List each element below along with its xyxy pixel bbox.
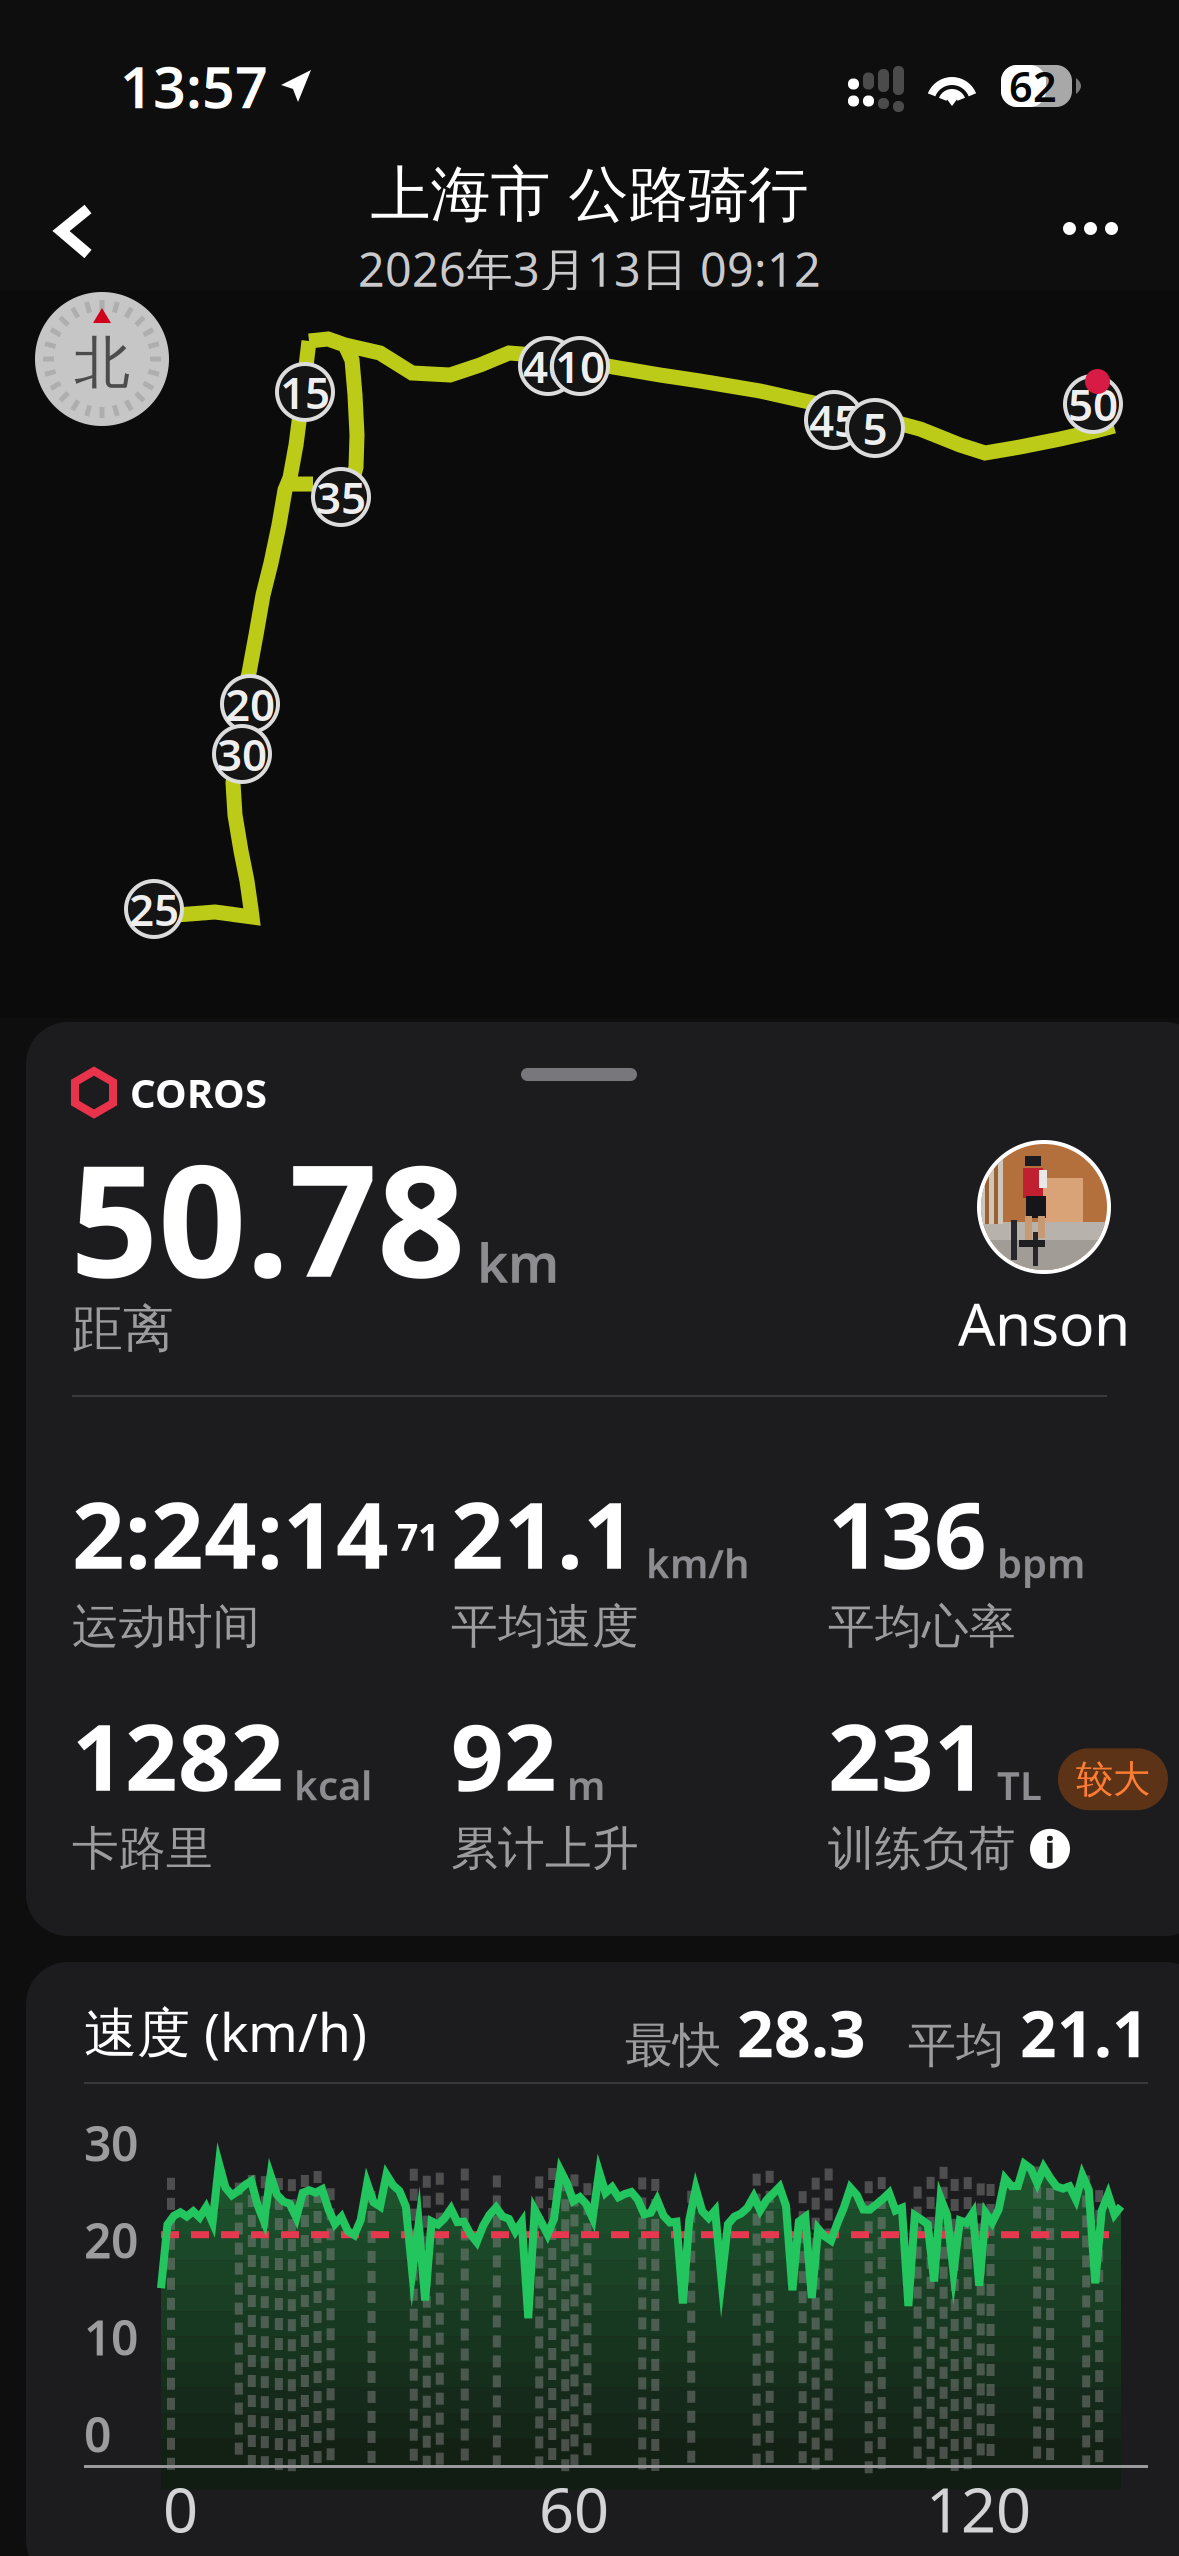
staticText: 62	[1009, 59, 1057, 113]
staticText: 10	[555, 337, 605, 395]
staticText: 92	[451, 1694, 557, 1816]
staticText: 50	[1068, 375, 1118, 433]
staticText: COROS	[130, 1066, 267, 1119]
staticText: 运动时间	[72, 1598, 260, 1655]
staticText: 30	[217, 725, 267, 783]
staticText: 35	[316, 468, 366, 526]
button[interactable]: More options	[1029, 190, 1152, 267]
staticText: 40	[523, 337, 573, 395]
staticText: 平均速度	[451, 1598, 639, 1655]
staticText: 0	[84, 2402, 111, 2466]
staticText: 距离	[72, 1298, 174, 1360]
staticText: 上海市 公路骑行	[370, 158, 808, 232]
staticText: TL	[997, 1758, 1042, 1811]
staticText: 28.3	[737, 1990, 866, 2075]
staticText: 60	[539, 2468, 609, 2549]
staticText: km	[477, 1227, 559, 1297]
staticText: kcal	[294, 1758, 372, 1811]
staticText: 120	[926, 2468, 1031, 2549]
staticText: 21.1	[1020, 1990, 1149, 2075]
staticText: 21.1	[451, 1472, 636, 1594]
staticText: 最快	[625, 2016, 721, 2075]
staticText: 0	[163, 2468, 198, 2549]
staticText: 2026年3月13日 09:12	[358, 238, 821, 300]
staticText: 136	[828, 1472, 987, 1594]
staticText: 20	[84, 2208, 138, 2272]
staticText: 卡路里	[72, 1820, 213, 1877]
staticText: km/h	[646, 1536, 750, 1589]
staticText: 平均	[908, 2016, 1004, 2075]
staticText: 13:57	[120, 48, 268, 124]
staticText: i	[1044, 1825, 1055, 1873]
staticText: 15	[280, 363, 330, 421]
staticText: 10	[84, 2305, 138, 2369]
staticText: 50.78	[70, 1114, 465, 1319]
staticText: 北	[74, 329, 130, 397]
staticText: 速度 (km/h)	[84, 1996, 367, 2067]
staticText: 45	[809, 391, 859, 449]
staticText: 2:24:14	[72, 1472, 389, 1594]
staticText: 累计上升	[451, 1820, 639, 1877]
staticText: 较大	[1076, 1756, 1150, 1802]
staticText: 71	[397, 1512, 439, 1561]
staticText: 231	[828, 1694, 987, 1816]
staticText: 20	[225, 675, 275, 733]
staticText: m	[567, 1758, 605, 1811]
staticText: 平均心率	[828, 1598, 1016, 1655]
button[interactable]: Back	[27, 176, 126, 287]
staticText: bpm	[997, 1536, 1085, 1589]
staticText: 1282	[72, 1694, 284, 1816]
staticText: 5	[862, 399, 887, 457]
staticText: 30	[84, 2111, 138, 2175]
staticText: 训练负荷	[828, 1820, 1016, 1877]
staticText: Anson	[958, 1284, 1130, 1362]
staticText: 25	[129, 880, 179, 938]
